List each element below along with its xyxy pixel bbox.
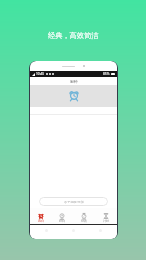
staticText: 85% [103,72,110,76]
button[interactable]: 不予提醒·添加 [39,197,108,206]
button[interactable]: 闹钟 [30,208,51,224]
staticText: 闹钟 [38,219,44,223]
staticText: 经典，高效简洁 [48,31,99,40]
staticText: 10:45 [36,72,45,76]
button[interactable]: 秒表 [73,208,95,224]
button[interactable]: Add alarm [69,90,79,100]
staticText: 计时 [103,219,109,223]
staticText: 秒表 [81,219,87,223]
staticText: 时钟 [59,219,65,223]
button[interactable]: 时钟 [51,208,73,224]
staticText: 不予提醒·添加 [64,200,84,204]
button[interactable]: 计时 [95,208,117,224]
staticText: 闹钟 [70,79,78,84]
